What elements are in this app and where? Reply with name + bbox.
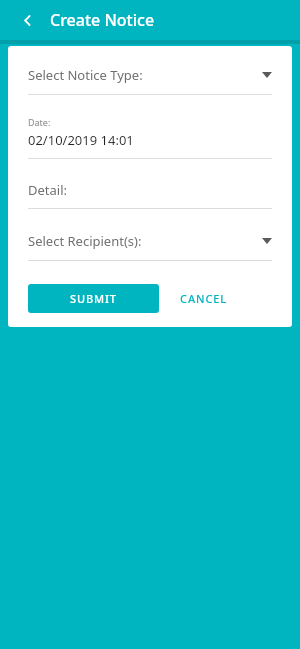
staticText: CANCEL (180, 291, 228, 306)
button[interactable]: CANCEL (159, 284, 249, 313)
button[interactable]: SUBMIT (28, 284, 159, 313)
button[interactable]: Back (13, 6, 41, 34)
staticText: Detail: (28, 181, 68, 199)
staticText: Select Notice Type: (28, 66, 262, 84)
staticText: Date: (28, 116, 51, 128)
button[interactable]: Detail: (8, 181, 292, 199)
button[interactable]: Select Recipient(s): (8, 232, 292, 250)
staticText: SUBMIT (70, 291, 117, 306)
staticText: Create Notice (50, 9, 155, 31)
button[interactable]: Date: (8, 116, 292, 149)
staticText: 02/10/2019 14:01 (28, 131, 134, 149)
staticText: Select Recipient(s): (28, 232, 262, 250)
button[interactable]: Select Notice Type: (8, 66, 292, 84)
